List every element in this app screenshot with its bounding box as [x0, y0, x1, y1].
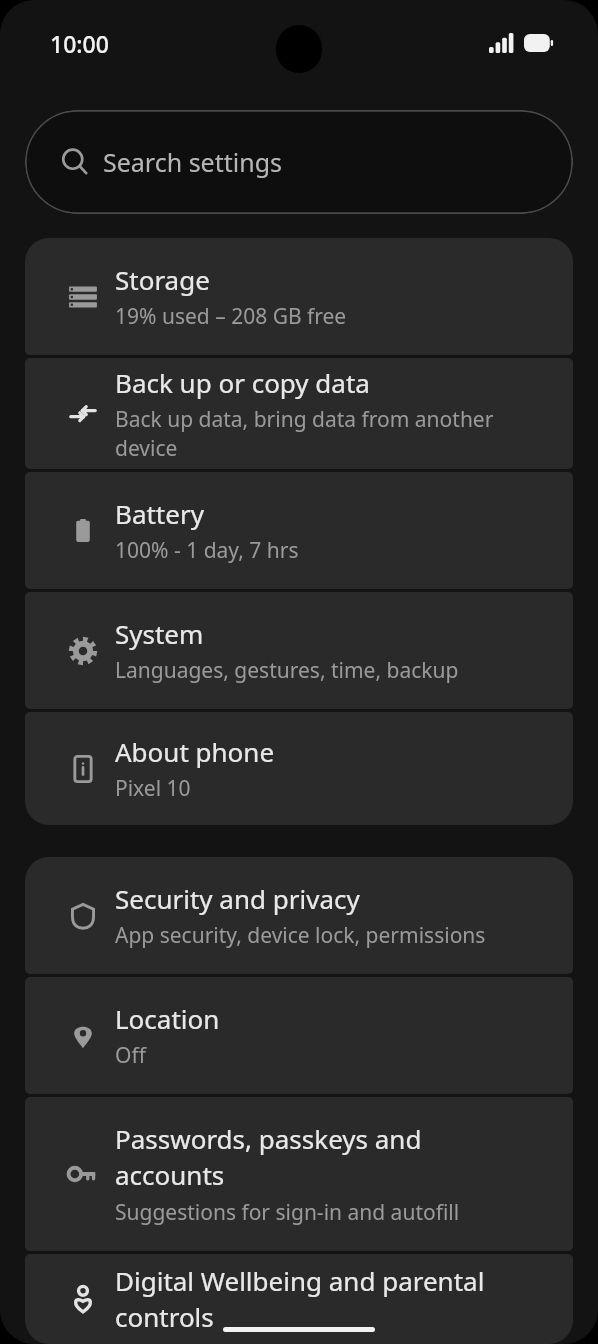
- staticText: Suggestions for sign-in and autofill: [115, 1198, 460, 1227]
- staticText: About phone: [115, 734, 275, 769]
- staticText: Off: [115, 1041, 146, 1070]
- button[interactable]: System: [25, 592, 573, 709]
- staticText: System: [115, 616, 204, 651]
- staticText: Storage: [115, 262, 210, 297]
- staticText: Digital Wellbeing and parental controls: [115, 1263, 485, 1335]
- button[interactable]: Search settings: [25, 110, 573, 214]
- staticText: Passwords, passkeys and accounts: [115, 1121, 422, 1193]
- staticText: Search settings: [103, 145, 283, 179]
- staticText: 10:00: [50, 28, 109, 59]
- staticText: Pixel 10: [115, 774, 191, 803]
- staticText: Security and privacy: [115, 881, 360, 916]
- button[interactable]: Storage: [25, 238, 573, 355]
- button[interactable]: About phone: [25, 712, 573, 825]
- button[interactable]: Battery: [25, 472, 573, 589]
- staticText: 100% - 1 day, 7 hrs: [115, 536, 299, 565]
- staticText: Battery: [115, 496, 204, 531]
- staticText: Back up or copy data: [115, 365, 370, 400]
- staticText: App security, device lock, permissions: [115, 921, 486, 950]
- staticText: Location: [115, 1001, 220, 1036]
- button[interactable]: Location: [25, 977, 573, 1094]
- button[interactable]: Digital Wellbeing and parental controls: [25, 1254, 573, 1344]
- button[interactable]: Back up or copy data: [25, 358, 573, 469]
- staticText: 19% used – 208 GB free: [115, 302, 347, 331]
- staticText: Back up data, bring data from another de…: [115, 405, 555, 463]
- button[interactable]: Passwords, passkeys and accounts: [25, 1097, 573, 1251]
- button[interactable]: Security and privacy: [25, 857, 573, 974]
- staticText: Languages, gestures, time, backup: [115, 656, 459, 685]
